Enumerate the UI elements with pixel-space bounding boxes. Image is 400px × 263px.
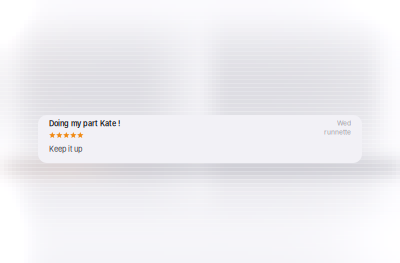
staticText: runnette (324, 128, 351, 136)
staticText: Doing my part Kate ! (49, 119, 120, 128)
staticText: Keep it up (49, 145, 82, 154)
button[interactable]: Doing my part Kate ! (38, 115, 362, 163)
staticText: Wed (337, 119, 351, 127)
